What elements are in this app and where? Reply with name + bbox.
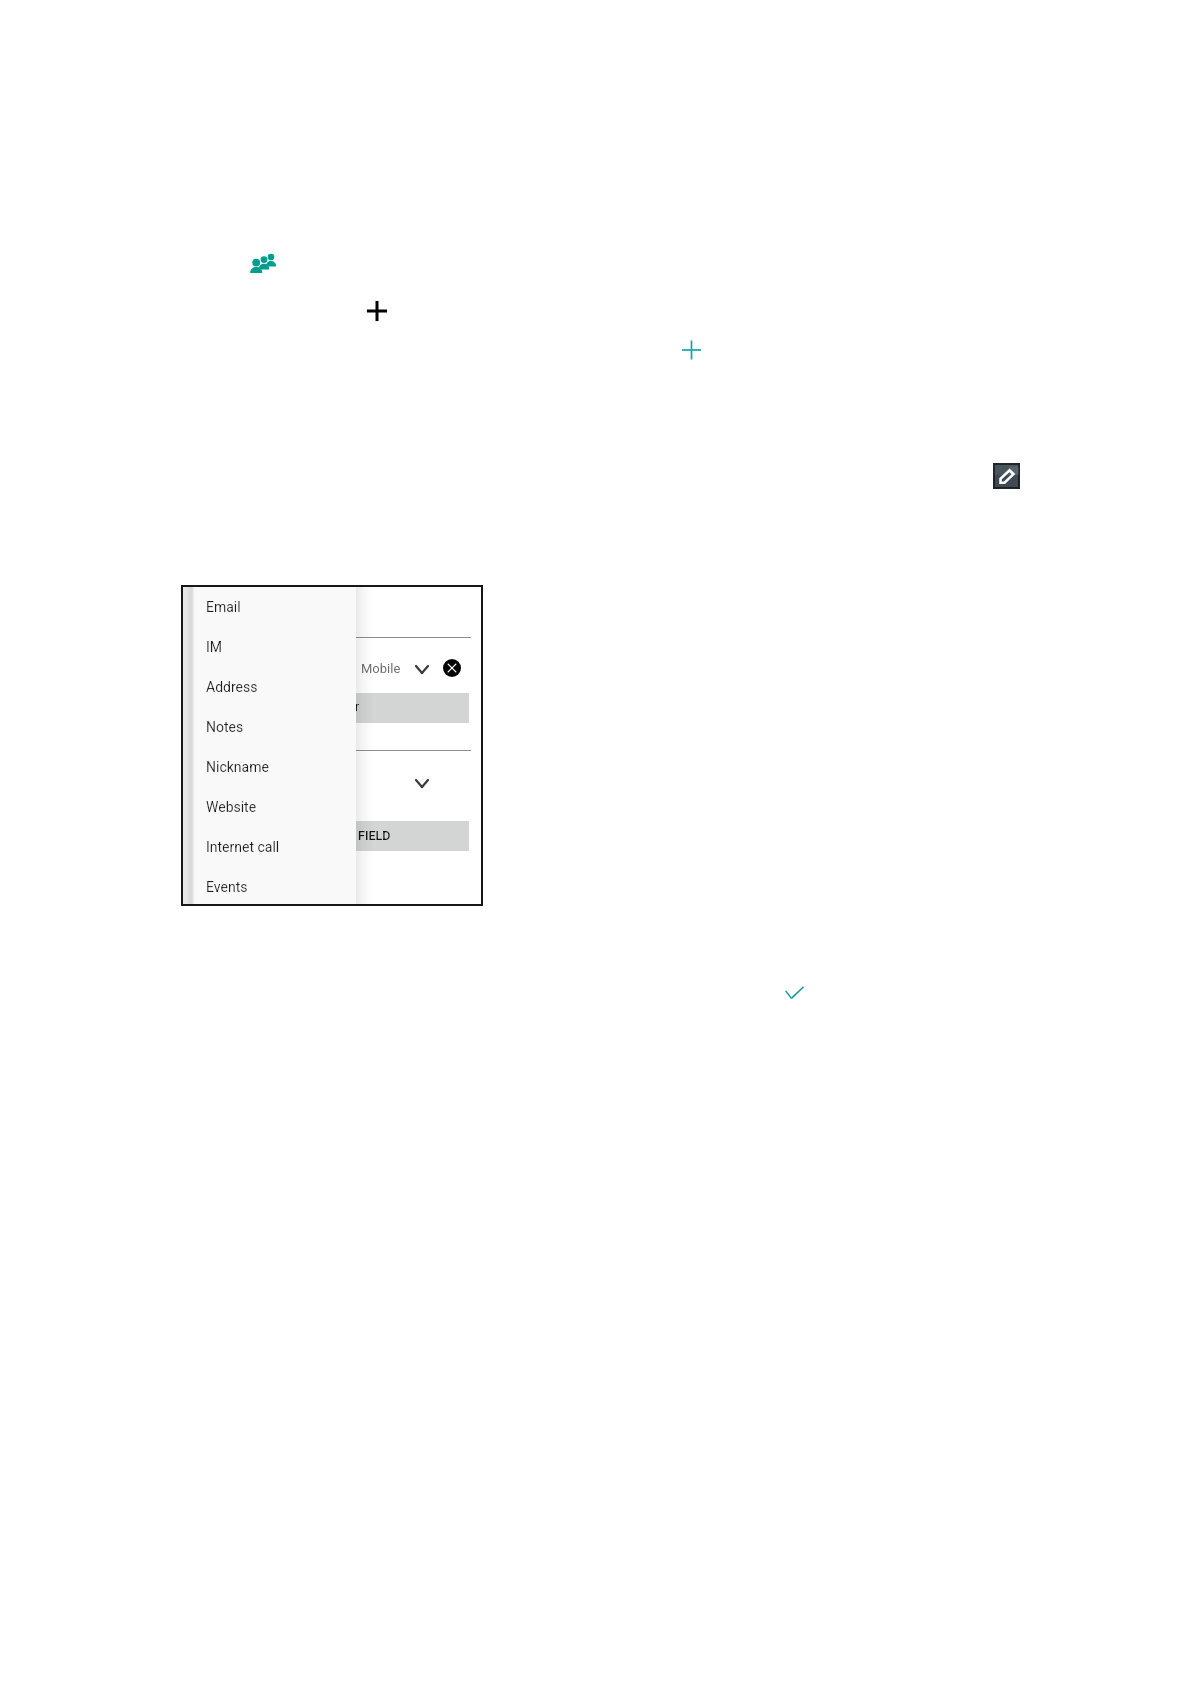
staticText: Notes bbox=[206, 719, 244, 735]
staticText: Internet call bbox=[206, 839, 280, 855]
staticText: Website bbox=[206, 799, 257, 815]
staticText: FIELD bbox=[358, 828, 391, 843]
button[interactable]: Contacts group bbox=[248, 250, 279, 276]
button[interactable]: Address bbox=[182, 667, 356, 707]
button[interactable]: IM bbox=[182, 627, 356, 667]
staticText: IM bbox=[206, 639, 223, 655]
button[interactable]: Notes bbox=[182, 707, 356, 747]
button[interactable]: Add field bbox=[677, 335, 707, 365]
staticText: Events bbox=[206, 879, 248, 895]
staticText: Mobile bbox=[361, 661, 401, 676]
button[interactable]: Events bbox=[182, 867, 356, 907]
staticText: Address bbox=[206, 679, 258, 695]
button[interactable]: Email bbox=[182, 587, 356, 627]
button[interactable]: Internet call bbox=[182, 827, 356, 867]
button[interactable]: Website bbox=[182, 787, 356, 827]
button[interactable]: Edit bbox=[994, 464, 1019, 488]
button[interactable]: Remove bbox=[443, 659, 461, 677]
button[interactable]: Done bbox=[780, 980, 808, 1008]
button[interactable]: Add bbox=[362, 296, 392, 326]
staticText: r bbox=[355, 699, 360, 714]
staticText: Email bbox=[206, 599, 241, 615]
button[interactable]: Nickname bbox=[182, 747, 356, 787]
staticText: Nickname bbox=[206, 759, 269, 775]
